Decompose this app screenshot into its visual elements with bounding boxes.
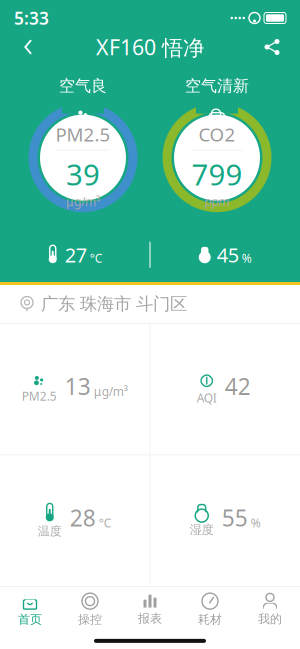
staticText: 首页 xyxy=(18,612,42,627)
button[interactable]: Back xyxy=(8,27,48,67)
button[interactable]: 操控 xyxy=(60,586,120,631)
staticText: PM2.5 xyxy=(22,388,57,404)
staticText: μg/m³ xyxy=(94,383,128,399)
button[interactable]: 广东 珠海市 斗门区 xyxy=(0,285,300,323)
button[interactable]: 温度 xyxy=(0,455,149,586)
button[interactable]: 耗材 xyxy=(180,586,240,631)
staticText: 空气清新 xyxy=(185,76,249,96)
button[interactable]: 报表 xyxy=(120,587,180,630)
staticText: 耗材 xyxy=(198,612,222,627)
staticText: 55 xyxy=(222,503,248,533)
staticText: 空气良 xyxy=(59,76,107,96)
staticText: PM2.5 xyxy=(55,122,110,147)
button[interactable]: Share xyxy=(252,27,292,67)
staticText: 42 xyxy=(225,371,251,401)
staticText: XF160 悟净 xyxy=(96,33,204,61)
button[interactable]: 我的 xyxy=(240,587,300,630)
staticText: 广东 珠海市 斗门区 xyxy=(41,293,187,315)
staticText: ppm xyxy=(204,194,229,209)
staticText: μg/m³ xyxy=(66,194,100,209)
staticText: 13 xyxy=(65,371,91,401)
button[interactable]: 首页 xyxy=(0,586,60,631)
staticText: AQI xyxy=(197,390,217,406)
staticText: CO2 xyxy=(198,122,235,147)
button[interactable]: PM2.5 xyxy=(0,324,149,454)
staticText: 27 xyxy=(65,241,87,268)
staticText: % xyxy=(251,515,261,531)
staticText: 操控 xyxy=(78,612,102,627)
staticText: 我的 xyxy=(258,612,282,626)
staticText: 报表 xyxy=(138,611,162,626)
staticText: 28 xyxy=(70,503,96,533)
staticText: % xyxy=(242,250,252,266)
staticText: 39 xyxy=(66,155,100,194)
staticText: 5:33 xyxy=(14,6,49,29)
button[interactable]: 湿度 xyxy=(150,455,300,586)
staticText: 温度 xyxy=(38,524,62,539)
staticText: 湿度 xyxy=(190,522,214,537)
staticText: 45 xyxy=(217,241,239,268)
staticText: 799 xyxy=(191,155,242,194)
staticText: °C xyxy=(90,250,103,266)
staticText: °C xyxy=(99,515,112,531)
button[interactable]: AQI xyxy=(150,324,300,454)
